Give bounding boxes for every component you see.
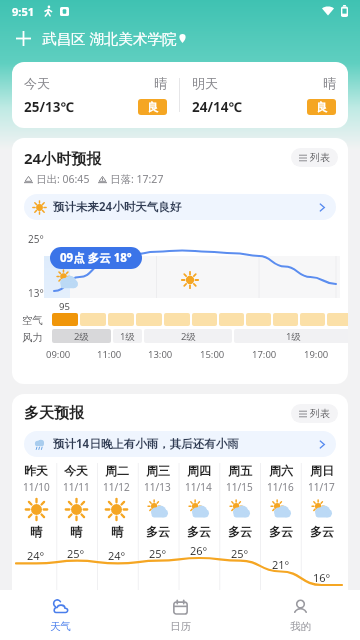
staticText: 今天: [24, 75, 50, 91]
button[interactable]: 预计14日晚上有小雨，其后还有小雨: [24, 431, 336, 457]
staticText: 25°: [67, 546, 85, 561]
staticText: 24°: [108, 548, 126, 563]
staticText: 11/14: [185, 480, 212, 494]
staticText: 19:00: [304, 348, 348, 361]
button[interactable]: 明天: [180, 62, 348, 128]
staticText: 周二: [105, 463, 129, 478]
staticText: 良: [147, 100, 158, 114]
staticText: 24小时预报: [24, 148, 102, 168]
button[interactable]: 周三: [137, 463, 178, 613]
staticText: 多云: [146, 524, 170, 539]
staticText: 列表: [310, 151, 330, 164]
staticText: 多云: [187, 524, 211, 539]
staticText: 11/10: [23, 480, 50, 494]
staticText: 26°: [190, 543, 208, 558]
staticText: 09点 多云 18°: [60, 250, 132, 266]
staticText: 多天预报: [24, 404, 84, 423]
staticText: 预计14日晚上有小雨，其后还有小雨: [53, 436, 239, 452]
button[interactable]: 09点 多云 18°: [50, 247, 142, 269]
button[interactable]: 今天: [56, 463, 96, 613]
staticText: 日出: 06:45: [36, 172, 90, 186]
staticText: 多云: [269, 524, 293, 539]
staticText: 多云: [310, 524, 334, 539]
staticText: 15:00: [200, 348, 252, 361]
staticText: 13:00: [148, 348, 200, 361]
staticText: 25°: [149, 546, 167, 561]
button[interactable]: 周日: [301, 463, 342, 613]
button[interactable]: 周六: [260, 463, 301, 613]
staticText: 周三: [146, 463, 170, 478]
button[interactable]: 周二: [96, 463, 137, 613]
button[interactable]: 预计未来24小时天气良好: [24, 194, 336, 220]
button[interactable]: 今天: [12, 62, 179, 128]
staticText: 周六: [269, 463, 293, 478]
staticText: 明天: [192, 75, 218, 91]
staticText: 昨天: [24, 463, 48, 478]
staticText: 1级: [120, 330, 135, 343]
staticText: 25/13℃: [24, 98, 75, 116]
button[interactable]: 周四: [178, 463, 219, 613]
staticText: 09:00: [46, 348, 97, 361]
staticText: 11/15: [226, 480, 253, 494]
button[interactable]: 列表: [291, 404, 338, 423]
staticText: 天气: [50, 620, 71, 633]
staticText: 11/16: [267, 480, 294, 494]
staticText: 武昌区 湖北美术学院: [42, 28, 177, 48]
button[interactable]: Add city: [12, 27, 34, 49]
staticText: 晴: [30, 524, 42, 539]
staticText: 周四: [187, 463, 211, 478]
staticText: 晴: [111, 524, 123, 539]
button[interactable]: 天气: [0, 590, 120, 640]
staticText: 24°: [27, 548, 45, 563]
staticText: 周日: [310, 463, 334, 478]
staticText: 9:51: [12, 4, 34, 19]
button[interactable]: 我的: [240, 590, 360, 640]
staticText: 11/17: [308, 480, 335, 494]
button[interactable]: 昨天: [16, 463, 56, 613]
staticText: 95: [59, 300, 70, 313]
staticText: 空气: [22, 314, 43, 327]
staticText: 列表: [310, 407, 330, 420]
staticText: 17:00: [252, 348, 304, 361]
staticText: 日历: [170, 620, 191, 633]
staticText: 晴: [70, 524, 82, 539]
staticText: 21°: [272, 557, 290, 572]
staticText: 周五: [228, 463, 252, 478]
staticText: 2级: [181, 330, 196, 343]
button[interactable]: 武昌区 湖北美术学院: [42, 28, 187, 48]
staticText: 预计未来24小时天气良好: [53, 199, 182, 215]
staticText: 日落: 17:27: [110, 172, 164, 186]
staticText: 25°: [28, 232, 44, 246]
staticText: 24/14℃: [192, 98, 243, 116]
staticText: 晴: [154, 75, 167, 91]
staticText: 11/13: [144, 480, 171, 494]
button[interactable]: 周五: [219, 463, 260, 613]
staticText: 风力: [22, 331, 43, 344]
staticText: 13°: [28, 286, 44, 300]
staticText: 16°: [313, 570, 331, 585]
staticText: 良: [316, 100, 327, 114]
button[interactable]: 日历: [120, 590, 240, 640]
staticText: 今天: [64, 463, 88, 478]
staticText: 11:00: [97, 348, 148, 361]
staticText: 我的: [290, 620, 311, 633]
staticText: 多云: [228, 524, 252, 539]
staticText: 2级: [74, 330, 89, 343]
staticText: 11/12: [103, 480, 130, 494]
button[interactable]: 列表: [291, 148, 338, 167]
staticText: 1级: [286, 330, 301, 343]
staticText: 晴: [323, 75, 336, 91]
staticText: 25°: [231, 546, 249, 561]
staticText: 11/11: [63, 480, 90, 494]
